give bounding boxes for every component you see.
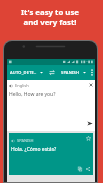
button[interactable]: Send bbox=[87, 121, 95, 131]
button[interactable]: Swap languages bbox=[46, 67, 58, 78]
button[interactable]: AUTO_DETE.. bbox=[7, 67, 46, 78]
button[interactable]: SPANISH bbox=[58, 67, 89, 78]
staticText: Hello, How are you? bbox=[9, 91, 56, 98]
button[interactable]: SPANISH bbox=[9, 133, 93, 175]
button[interactable]: Clear bbox=[89, 80, 95, 87]
button[interactable]: More options bbox=[89, 66, 95, 79]
staticText: English bbox=[15, 83, 29, 88]
button[interactable]: Share bbox=[85, 166, 91, 172]
button[interactable]: Copy bbox=[77, 166, 83, 172]
staticText: It's easy to use and very fast! bbox=[21, 7, 79, 27]
button[interactable]: Favorite bbox=[86, 133, 93, 141]
staticText: Hola. ¿Cómo estás? bbox=[11, 146, 57, 153]
staticText: SPANISH bbox=[61, 70, 80, 75]
staticText: AUTO_DETE.. bbox=[10, 70, 37, 75]
staticText: SPANISH bbox=[17, 138, 34, 143]
